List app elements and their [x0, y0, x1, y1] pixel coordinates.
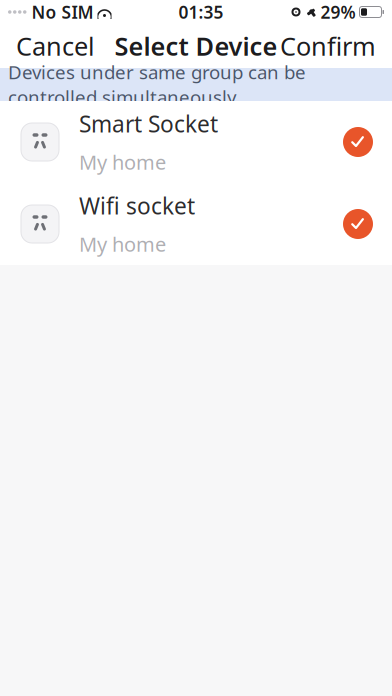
button[interactable]: Confirm [264, 24, 392, 68]
staticText: Confirm [280, 29, 376, 63]
staticText: My home [79, 231, 166, 257]
staticText: 01:35 [178, 0, 223, 23]
button[interactable]: Cancel [0, 24, 111, 68]
staticText: 29% [320, 0, 355, 23]
button[interactable]: Smart Socket [0, 101, 392, 183]
staticText: My home [79, 149, 166, 175]
staticText: No SIM [31, 0, 93, 23]
button[interactable]: Wifi socket [0, 183, 392, 265]
staticText: Select Device [114, 29, 277, 63]
staticText: Smart Socket [79, 109, 218, 139]
staticText: Wifi socket [79, 191, 195, 221]
staticText: Cancel [16, 29, 95, 63]
staticText: Devices under same group can be controll… [8, 60, 306, 109]
